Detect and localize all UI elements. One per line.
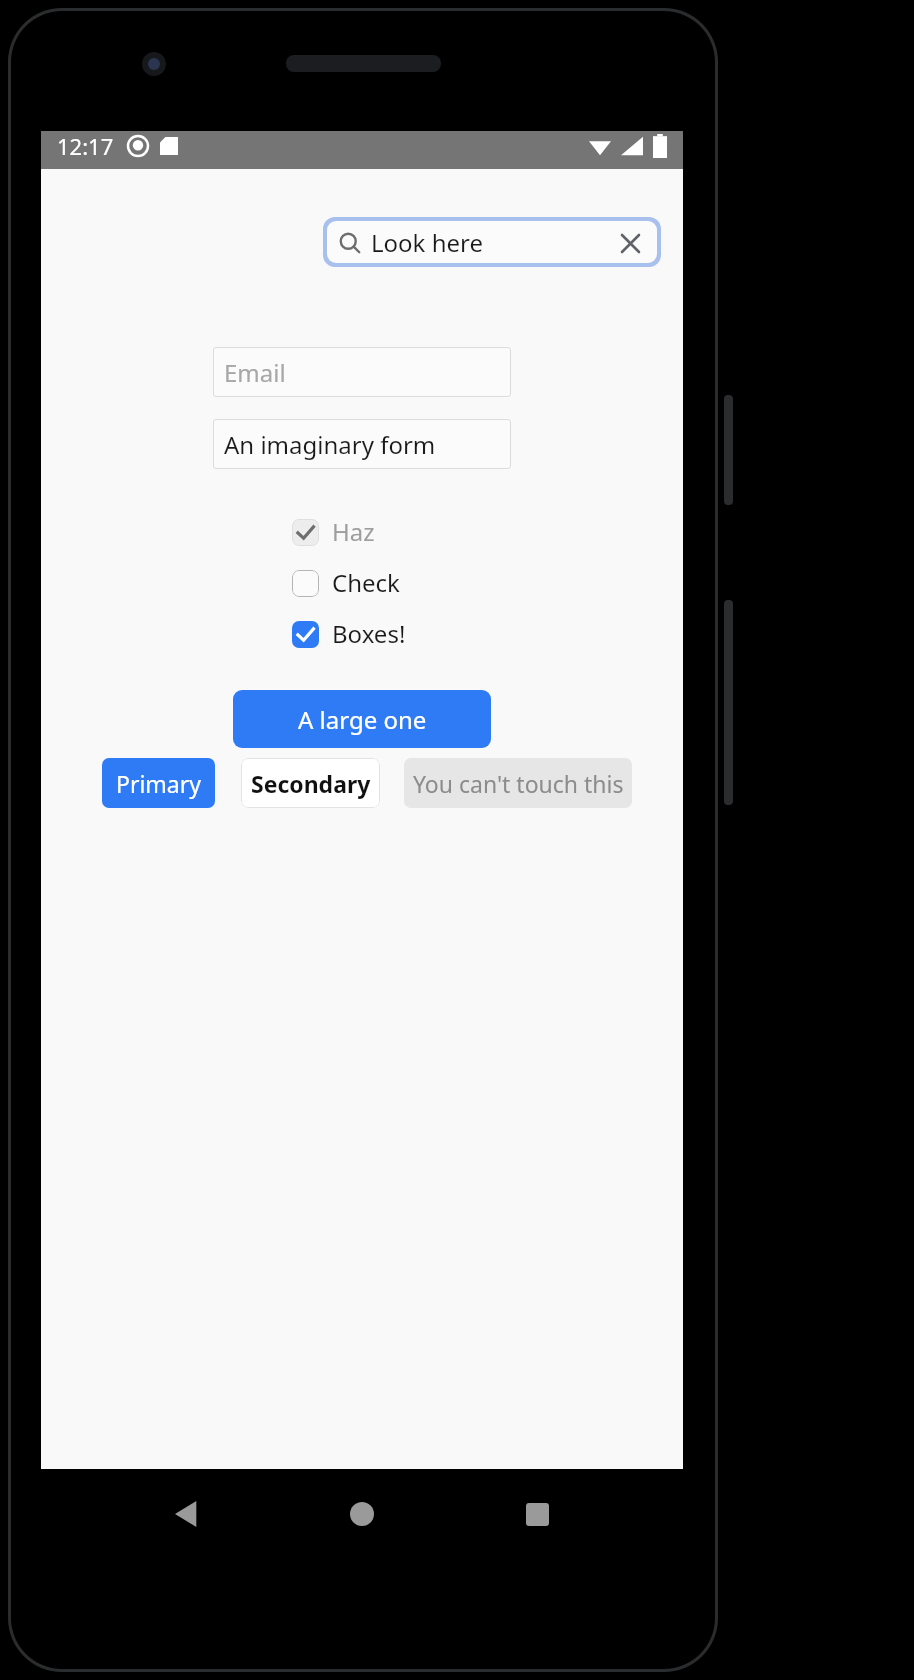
button[interactable]: Home bbox=[334, 1486, 390, 1542]
staticText: Boxes! bbox=[332, 617, 406, 650]
staticText: Haz bbox=[332, 515, 375, 548]
staticText: You can't touch this bbox=[413, 768, 624, 799]
staticText: Email bbox=[224, 356, 286, 389]
staticText: Look here bbox=[371, 226, 484, 259]
button[interactable]: Back bbox=[160, 1486, 216, 1542]
staticText: Primary bbox=[116, 768, 201, 799]
button[interactable]: Look here bbox=[327, 221, 657, 263]
staticText: Check bbox=[332, 566, 400, 599]
staticText: A large one bbox=[298, 703, 427, 736]
button[interactable]: Haz bbox=[267, 515, 457, 548]
button[interactable]: Boxes! bbox=[267, 617, 457, 650]
button[interactable]: Clear search bbox=[615, 228, 645, 258]
button[interactable]: Check bbox=[267, 566, 457, 599]
button[interactable]: You can't touch this bbox=[404, 758, 632, 808]
button[interactable]: Email bbox=[213, 347, 511, 397]
staticText: 12:17 bbox=[57, 131, 114, 161]
button[interactable]: An imaginary form bbox=[213, 419, 511, 469]
staticText: Secondary bbox=[251, 768, 371, 799]
staticText: An imaginary form bbox=[224, 428, 436, 461]
button[interactable]: A large one bbox=[233, 690, 491, 748]
button[interactable]: Recent apps bbox=[509, 1486, 565, 1542]
button[interactable]: Primary bbox=[102, 758, 215, 808]
button[interactable]: Secondary bbox=[241, 758, 380, 808]
